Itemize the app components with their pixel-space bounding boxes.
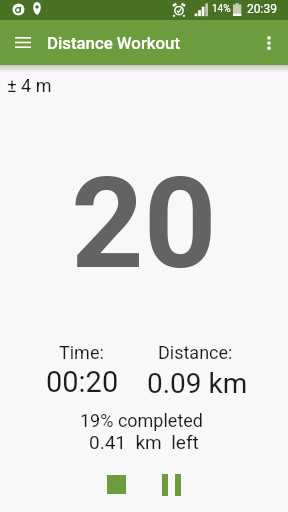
button[interactable]: More options [253, 27, 285, 59]
staticText: Time: [59, 342, 104, 363]
staticText: Distance Workout [47, 33, 181, 53]
staticText: 00:20 [46, 365, 119, 399]
staticText: 20 [71, 149, 217, 298]
button[interactable]: Open navigation drawer [7, 26, 39, 58]
staticText: 0.09 km [147, 367, 248, 400]
staticText: Distance: [158, 342, 233, 363]
staticText: 14% [212, 3, 231, 15]
button[interactable]: Pause [149, 462, 194, 507]
staticText: 20:39 [247, 2, 277, 16]
staticText: 0.41 km left [89, 431, 199, 453]
button[interactable]: Stop [94, 462, 139, 507]
staticText: ± 4 m [7, 75, 52, 96]
staticText: 19% completed [80, 410, 203, 431]
